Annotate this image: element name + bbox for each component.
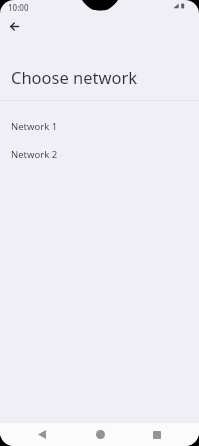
button[interactable]: Back [2,14,26,38]
button[interactable]: Recents [141,423,173,446]
button[interactable]: Back [26,423,58,446]
staticText: 10:00 [8,2,29,13]
staticText: Network 2 [11,148,58,161]
staticText: Network 1 [11,120,58,133]
button[interactable]: Home [84,423,116,446]
button[interactable]: Network 1 [0,112,199,140]
button[interactable]: Network 2 [0,140,199,168]
staticText: Choose network [11,66,138,88]
